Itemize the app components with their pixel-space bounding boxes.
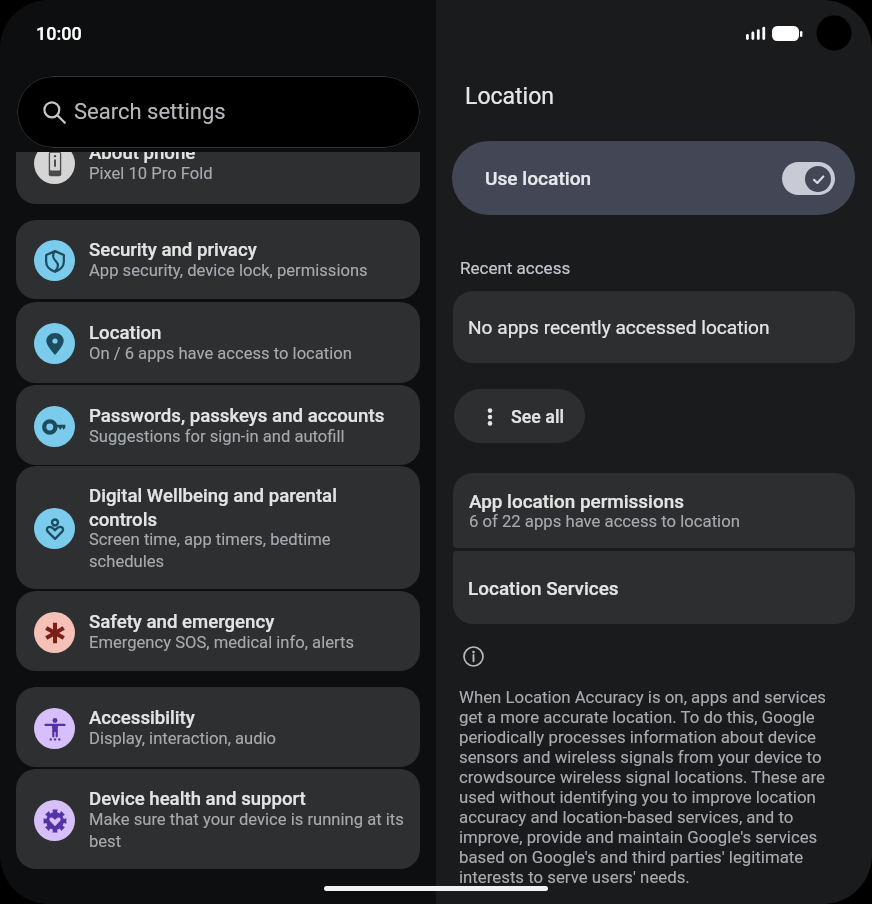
button[interactable]: Search settings <box>17 76 420 148</box>
button[interactable]: See all <box>454 389 585 443</box>
staticText: Emergency SOS, medical info, alerts <box>89 633 354 652</box>
button[interactable]: Accessibility <box>16 687 420 767</box>
button[interactable]: Digital Wellbeing and parental controls <box>16 466 420 589</box>
staticText: When Location Accuracy is on, apps and s… <box>459 687 839 887</box>
staticText: Digital Wellbeing and parental controls <box>89 485 406 530</box>
staticText: See all <box>511 406 565 427</box>
staticText: Screen time, app timers, bedtime schedul… <box>89 530 406 571</box>
staticText: Pixel 10 Pro Fold <box>89 164 213 183</box>
staticText: No apps recently accessed location <box>468 316 770 338</box>
staticText: 6 of 22 apps have access to location <box>469 512 740 532</box>
button[interactable]: Device health and support <box>16 769 420 869</box>
staticText: Recent access <box>460 258 571 278</box>
staticText: 10:00 <box>36 23 82 44</box>
staticText: Use location <box>485 167 592 189</box>
staticText: Suggestions for sign-in and autofill <box>89 427 345 446</box>
button[interactable]: Safety and emergency <box>16 591 420 671</box>
staticText: Location <box>465 83 554 110</box>
staticText: Make sure that your device is running at… <box>89 810 406 851</box>
staticText: Security and privacy <box>89 239 257 261</box>
button[interactable]: About phone <box>16 120 420 204</box>
staticText: Passwords, passkeys and accounts <box>89 405 385 427</box>
staticText: Safety and emergency <box>89 611 275 633</box>
staticText: Search settings <box>74 99 226 125</box>
staticText: Location Services <box>468 577 619 599</box>
staticText: Device health and support <box>89 788 306 810</box>
button[interactable]: App location permissions <box>453 473 855 548</box>
button[interactable]: Use location <box>452 141 855 215</box>
staticText: App security, device lock, permissions <box>89 261 368 280</box>
staticText: On / 6 apps have access to location <box>89 344 352 363</box>
button[interactable]: Location Services <box>453 551 855 624</box>
staticText: About phone <box>89 142 196 164</box>
staticText: Display, interaction, audio <box>89 729 277 748</box>
button[interactable]: Passwords, passkeys and accounts <box>16 385 420 465</box>
button[interactable]: Location <box>16 302 420 383</box>
staticText: App location permissions <box>469 490 684 512</box>
staticText: Location <box>89 322 162 344</box>
button[interactable]: Security and privacy <box>16 220 420 299</box>
staticText: Accessibility <box>89 707 195 729</box>
